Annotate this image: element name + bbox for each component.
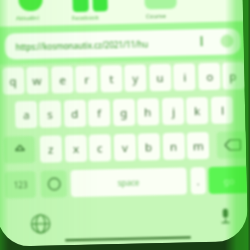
button[interactable]: go: [208, 166, 247, 194]
staticText: i: [183, 69, 187, 86]
staticText: f: [97, 105, 101, 121]
staticText: m: [193, 138, 204, 154]
button[interactable]: Dictation: [217, 206, 234, 227]
staticText: u: [156, 70, 165, 86]
button[interactable]: a: [15, 101, 37, 128]
button[interactable]: k: [186, 97, 208, 124]
staticText: l: [221, 103, 224, 119]
staticText: s: [47, 106, 53, 123]
button[interactable]: [217, 131, 246, 159]
button[interactable]: [144, 0, 177, 9]
button[interactable]: u: [149, 64, 172, 91]
staticText: .: [197, 174, 200, 188]
staticText: c: [97, 140, 103, 156]
staticText: Aktuální: [16, 14, 40, 22]
staticText: r: [84, 72, 90, 88]
button[interactable]: space: [70, 167, 187, 197]
button[interactable]: .: [190, 167, 206, 194]
button[interactable]: m: [187, 132, 209, 159]
staticText: 123: [14, 179, 28, 190]
staticText: k: [194, 103, 201, 119]
staticText: https://kosmonautix.cz/2021/11/hu: [15, 38, 149, 52]
staticText: t: [109, 71, 115, 87]
button[interactable]: q: [2, 67, 25, 95]
button[interactable]: p: [222, 62, 245, 90]
staticText: go: [224, 174, 235, 187]
staticText: p: [229, 68, 238, 84]
staticText: Facebook: [72, 13, 99, 22]
staticText: x: [73, 141, 80, 157]
button[interactable]: s: [39, 100, 61, 128]
button[interactable]: f: [88, 99, 110, 127]
staticText: b: [145, 139, 153, 155]
button[interactable]: [4, 136, 35, 164]
button[interactable]: x: [65, 135, 87, 162]
button[interactable]: [18, 0, 43, 11]
button[interactable]: g: [113, 99, 135, 126]
button[interactable]: y: [124, 64, 147, 92]
staticText: n: [170, 139, 178, 155]
button[interactable]: n: [163, 132, 185, 160]
button[interactable]: h: [137, 98, 159, 126]
staticText: z: [48, 141, 54, 158]
staticText: q: [9, 73, 18, 89]
button[interactable]: o: [198, 63, 221, 90]
button[interactable]: j: [162, 97, 184, 125]
button[interactable]: Change keyboard: [30, 214, 51, 234]
button[interactable]: l: [211, 96, 233, 124]
button[interactable]: r: [75, 65, 98, 93]
staticText: v: [122, 140, 128, 156]
button[interactable]: [40, 170, 67, 198]
staticText: j: [172, 104, 175, 120]
button[interactable]: w: [26, 67, 49, 94]
staticText: o: [206, 69, 214, 85]
staticText: h: [144, 104, 152, 120]
button[interactable]: [4, 28, 241, 60]
staticText: e: [59, 72, 67, 88]
staticText: d: [71, 106, 79, 122]
button[interactable]: d: [64, 100, 86, 127]
button[interactable]: t: [100, 65, 123, 92]
staticText: y: [132, 71, 139, 87]
button[interactable]: e: [51, 66, 74, 94]
button[interactable]: [72, 0, 89, 12]
button[interactable]: 123: [4, 171, 36, 199]
button[interactable]: [92, 0, 108, 12]
staticText: Course: [146, 12, 166, 20]
button[interactable]: v: [114, 134, 136, 161]
button[interactable]: c: [89, 134, 111, 162]
button[interactable]: b: [138, 133, 160, 161]
staticText: a: [23, 107, 30, 123]
staticText: space: [118, 177, 140, 188]
button[interactable]: Reader: [194, 34, 209, 49]
button[interactable]: Stop: [220, 34, 234, 48]
button[interactable]: z: [40, 135, 62, 163]
staticText: g: [120, 105, 128, 121]
staticText: w: [32, 73, 43, 89]
button[interactable]: i: [173, 63, 196, 91]
